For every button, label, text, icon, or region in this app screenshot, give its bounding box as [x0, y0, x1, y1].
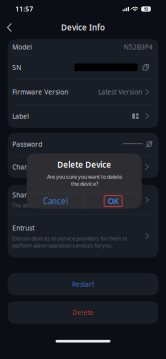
- button[interactable]: Share Device: [8, 185, 158, 215]
- staticText: Restart: [72, 280, 94, 289]
- button[interactable]: Cancel: [27, 194, 84, 209]
- staticText: Model: [12, 43, 32, 51]
- staticText: Label: [12, 112, 29, 121]
- staticText: 11:57: [15, 5, 33, 13]
- staticText: 92: [144, 6, 148, 12]
- button[interactable]: SN: [8, 55, 158, 79]
- staticText: Delete: [72, 308, 93, 317]
- staticText: Device Info: [61, 22, 105, 33]
- staticText: ••••••••••: [123, 140, 143, 148]
- button[interactable]: Delete: [8, 301, 158, 324]
- staticText: Firmware Version: [12, 87, 68, 96]
- staticText: Change Password: [12, 162, 68, 171]
- button[interactable]: Entrust: [8, 215, 158, 257]
- staticText: Share Device: [12, 191, 54, 199]
- staticText: Latest Version: [98, 87, 142, 96]
- staticText: SN: [12, 63, 21, 72]
- button[interactable]: Change Password: [8, 156, 158, 178]
- button[interactable]: Restart: [8, 273, 158, 295]
- staticText: Password: [12, 140, 42, 148]
- button[interactable]: OK: [84, 194, 142, 209]
- button[interactable]: Password: [8, 133, 158, 155]
- staticText: The device owner can share devices with …: [12, 202, 127, 209]
- staticText: Entrust devices to service providers for…: [12, 235, 127, 249]
- staticText: Entrust: [12, 224, 34, 232]
- staticText: N52B3P4: [124, 43, 153, 51]
- button[interactable]: Back: [0, 19, 19, 35]
- button[interactable]: Firmware Version: [8, 80, 158, 104]
- staticText: Cancel: [43, 196, 68, 206]
- staticText: Are you sure you want to delete the devi…: [47, 173, 122, 187]
- button[interactable]: Label: [8, 104, 158, 128]
- button[interactable]: Model: [8, 39, 158, 55]
- staticText: OK: [108, 196, 119, 206]
- staticText: Delete Device: [57, 159, 111, 170]
